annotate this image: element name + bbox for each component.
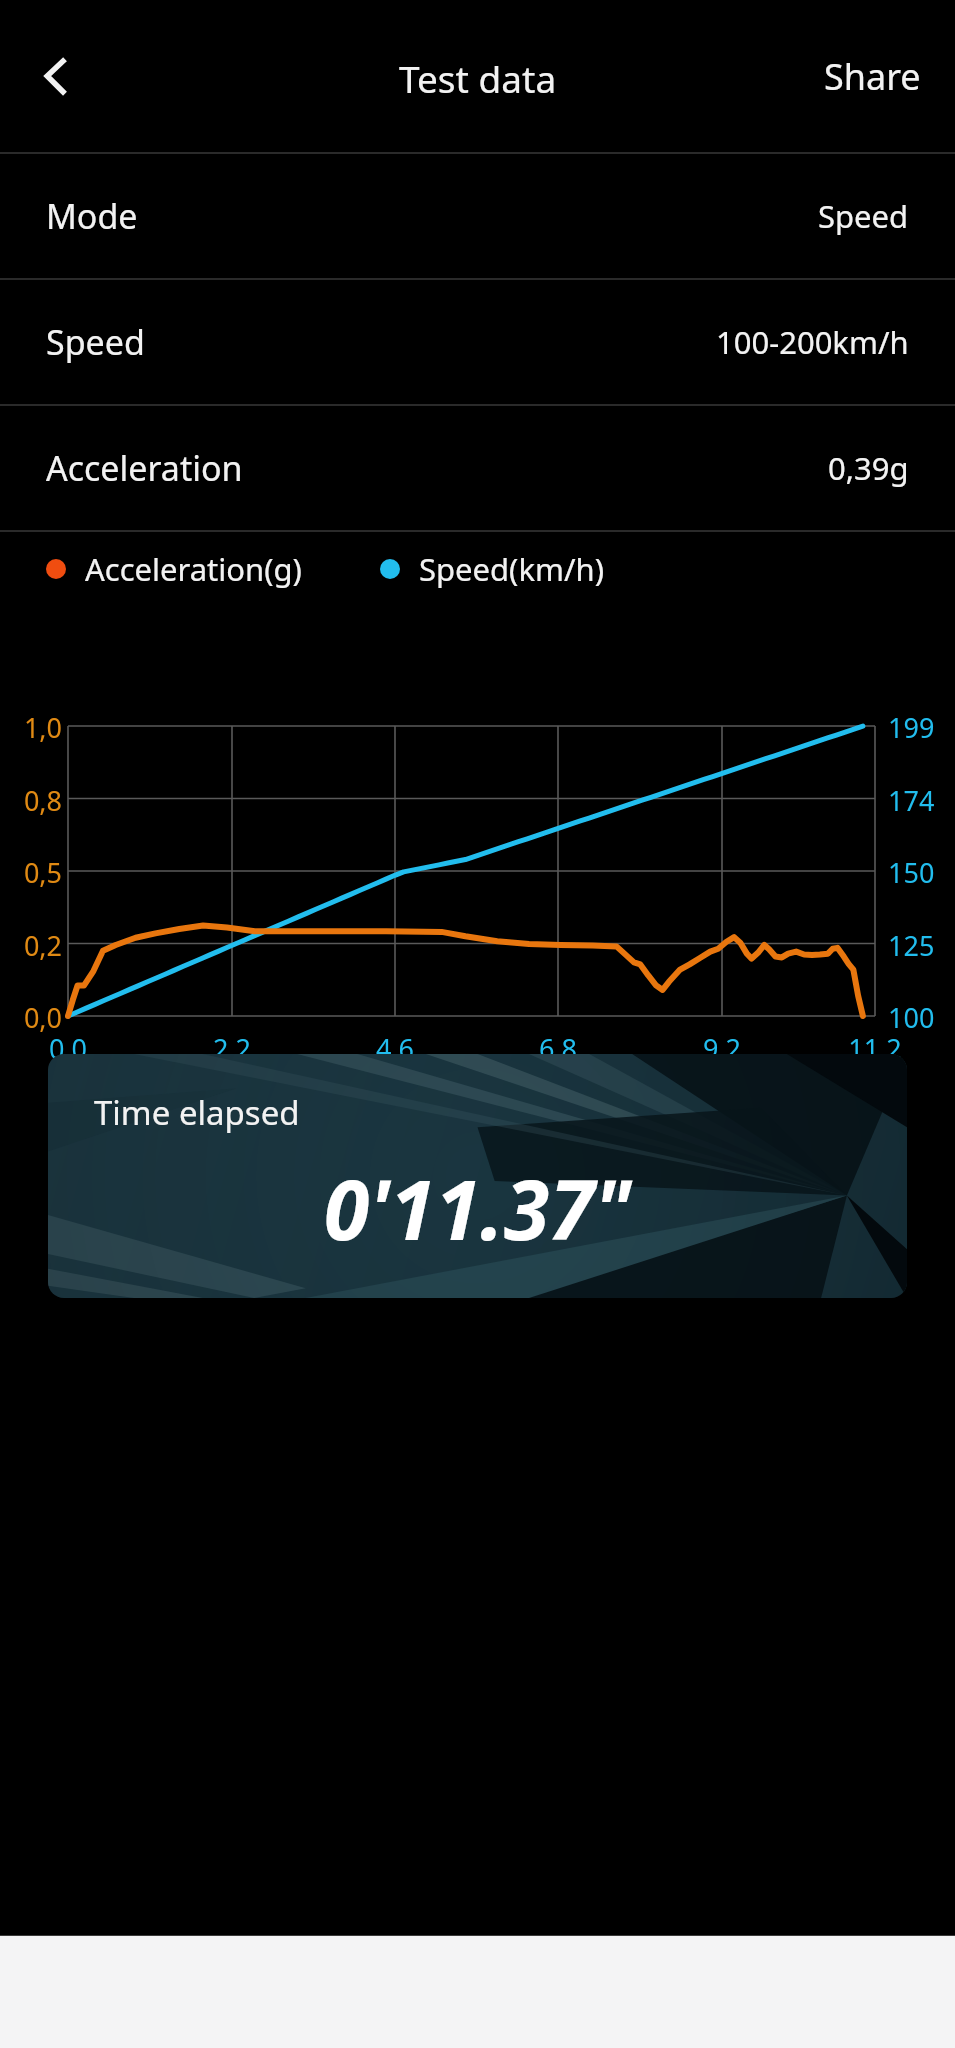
- button[interactable]: Share: [814, 38, 931, 115]
- staticText: 1,0: [6, 709, 62, 746]
- button[interactable]: Mode: [0, 154, 955, 278]
- staticText: 9,2: [682, 1030, 762, 1067]
- staticText: 100-200km/h: [716, 321, 909, 363]
- staticText: 0,8: [6, 782, 62, 819]
- staticText: 2,2: [192, 1030, 272, 1067]
- staticText: 0,0: [6, 999, 62, 1036]
- staticText: 0,2: [6, 927, 62, 964]
- staticText: 125: [888, 927, 935, 964]
- staticText: Share: [824, 52, 921, 101]
- staticText: 0'11.37": [324, 1152, 632, 1264]
- staticText: Mode: [46, 193, 138, 239]
- staticText: Speed(km/h): [419, 548, 604, 590]
- staticText: 150: [888, 854, 935, 891]
- staticText: Acceleration(g): [85, 548, 302, 590]
- staticText: 6,8: [518, 1030, 598, 1067]
- button[interactable]: Back: [12, 32, 100, 120]
- staticText: Test data: [399, 53, 557, 103]
- staticText: 0,5: [6, 854, 62, 891]
- staticText: 11,2: [835, 1030, 915, 1067]
- staticText: 199: [888, 709, 935, 746]
- button[interactable]: Speed: [0, 280, 955, 404]
- staticText: Speed: [818, 195, 909, 237]
- staticText: 100: [888, 999, 935, 1036]
- staticText: Time elapsed: [94, 1090, 300, 1135]
- button[interactable]: Acceleration: [0, 406, 955, 530]
- staticText: 0,39g: [828, 447, 909, 489]
- staticText: 4,6: [355, 1030, 435, 1067]
- staticText: Speed: [46, 319, 145, 365]
- staticText: Acceleration: [46, 445, 243, 491]
- button[interactable]: Time elapsed: [48, 1054, 907, 1298]
- staticText: 0,0: [28, 1030, 108, 1067]
- staticText: 174: [888, 782, 935, 819]
